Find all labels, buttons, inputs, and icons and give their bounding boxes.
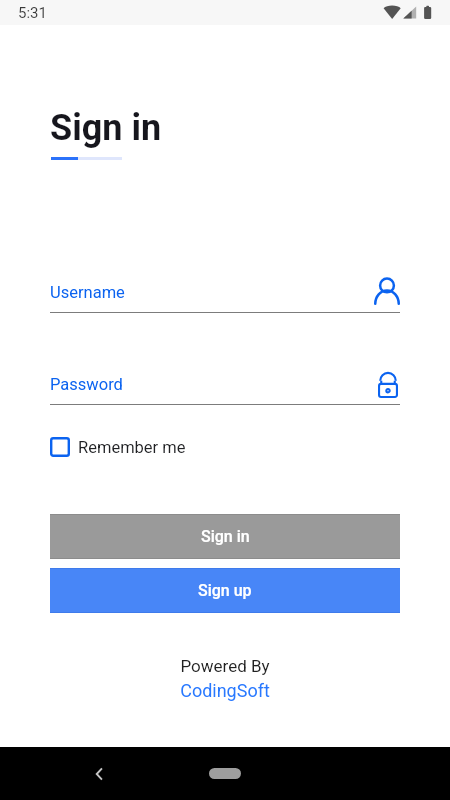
staticText: Sign in (201, 527, 250, 546)
other: Password icon (380, 372, 400, 398)
staticText: Remember me (78, 438, 186, 457)
staticText: Sign in (50, 107, 162, 149)
staticText: Username (50, 283, 374, 302)
staticText: 5:31 (18, 4, 47, 22)
button[interactable]: Remember me (50, 437, 186, 457)
staticText: Powered By (180, 656, 270, 676)
button[interactable]: Back (90, 765, 108, 783)
button[interactable]: CodingSoft (180, 680, 270, 701)
button[interactable]: Username (50, 277, 400, 313)
other: User icon (374, 279, 400, 306)
staticText: Password (50, 375, 380, 394)
button[interactable]: Password (50, 369, 400, 405)
button[interactable]: Home (209, 768, 241, 779)
staticText: Sign up (198, 581, 252, 600)
button[interactable]: Sign up (50, 568, 400, 613)
button[interactable]: Sign in (50, 514, 400, 559)
